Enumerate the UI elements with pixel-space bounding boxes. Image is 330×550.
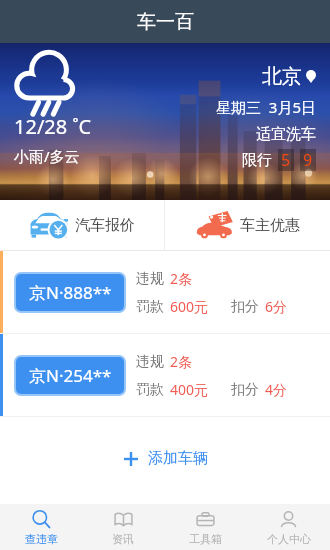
staticText: 4分 [265, 380, 288, 399]
staticText: 2条 [170, 269, 193, 288]
staticText: 扣分 [231, 381, 259, 399]
button[interactable]: 查违章 [0, 504, 82, 550]
staticText: 5 [281, 149, 291, 171]
staticText: 适宜洗车 [256, 125, 316, 144]
staticText: 扣分 [231, 298, 259, 316]
button[interactable]: 资讯 [82, 504, 164, 550]
button[interactable]: 工具箱 [164, 504, 247, 550]
staticText: 限行 [242, 151, 272, 170]
staticText: 违规 [136, 270, 164, 288]
staticText: 2条 [170, 352, 193, 371]
button[interactable]: 汽车报价 [0, 200, 164, 250]
staticText: 添加车辆 [148, 449, 208, 468]
staticText: 600元 [170, 297, 209, 316]
staticText: 12/28 ˚C [14, 113, 92, 140]
button[interactable]: 个人中心 [247, 504, 330, 550]
staticText: 查违章 [25, 532, 58, 546]
staticText: 资讯 [112, 532, 134, 546]
staticText: 工具箱 [189, 532, 222, 546]
staticText: 车一百 [137, 10, 194, 34]
staticText: 罚款 [136, 298, 164, 316]
staticText: 星期三 3月5日 [216, 97, 316, 117]
button[interactable]: 京N·254** [0, 334, 330, 416]
staticText: 9 [303, 149, 313, 171]
staticText: 汽车报价 [75, 216, 135, 235]
staticText: 车主优惠 [240, 216, 300, 235]
staticText: 小雨/多云 [14, 146, 80, 166]
button[interactable]: 添加车辆 [0, 417, 330, 504]
staticText: 京N·254** [29, 364, 112, 387]
staticText: 400元 [170, 380, 209, 399]
staticText: 违规 [136, 353, 164, 371]
staticText: 6分 [265, 297, 288, 316]
staticText: 罚款 [136, 381, 164, 399]
staticText: 个人中心 [267, 532, 311, 546]
button[interactable]: 车主优惠 [165, 200, 330, 250]
staticText: 京N·888** [29, 281, 112, 304]
staticText: 北京 [262, 64, 302, 89]
button[interactable]: 京N·888** [0, 251, 330, 333]
